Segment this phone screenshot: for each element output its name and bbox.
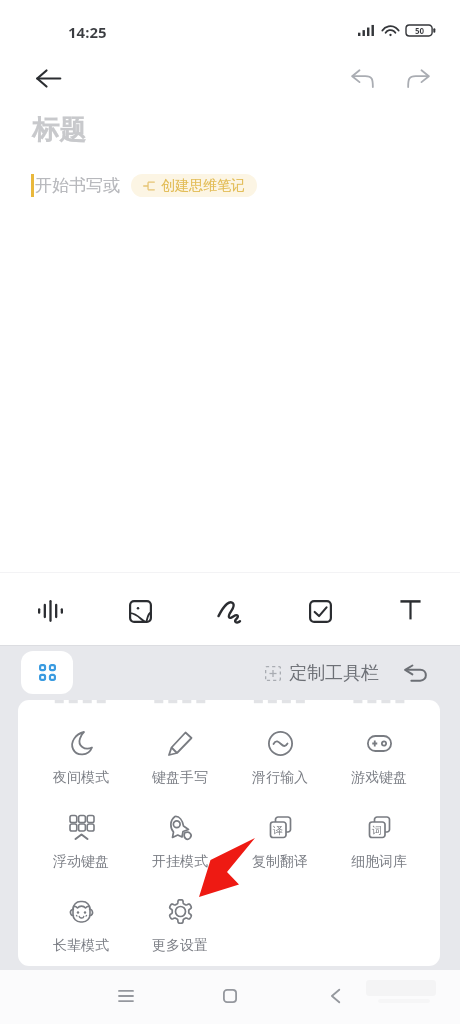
staticText: 50 xyxy=(415,25,425,36)
staticText: 夜间模式 xyxy=(53,769,109,787)
button[interactable]: 更多设置 xyxy=(140,890,220,955)
staticText: 浮动键盘 xyxy=(53,853,109,871)
button[interactable]: Home xyxy=(200,971,260,1021)
button[interactable]: Toolbox xyxy=(21,651,73,694)
staticText: 标题 xyxy=(32,113,86,147)
button[interactable]: Handwriting xyxy=(185,576,275,644)
button[interactable]: Recent apps xyxy=(96,971,156,1021)
staticText: 译 xyxy=(273,824,283,837)
button[interactable]: 浮动键盘 xyxy=(41,806,121,871)
staticText: 定制工具栏 xyxy=(289,662,379,685)
staticText: 开始书写或 xyxy=(35,175,120,196)
staticText: 游戏键盘 xyxy=(351,769,407,787)
staticText: 复制翻译 xyxy=(252,853,308,871)
button[interactable]: 键盘手写 xyxy=(140,722,220,787)
button[interactable]: 游戏键盘 xyxy=(339,722,419,787)
button[interactable]: Back xyxy=(26,56,70,100)
button[interactable]: 定制工具栏 xyxy=(263,659,381,688)
staticText: 词 xyxy=(372,824,382,837)
button[interactable]: Insert image xyxy=(95,576,185,644)
staticText: 细胞词库 xyxy=(351,853,407,871)
button[interactable]: Back xyxy=(305,971,365,1021)
button[interactable]: Record audio xyxy=(5,576,95,644)
button[interactable]: Collapse keyboard xyxy=(398,656,432,690)
button[interactable]: 开挂模式 xyxy=(140,806,220,871)
button[interactable]: 创建思维笔记 xyxy=(131,174,257,197)
staticText: 键盘手写 xyxy=(152,769,208,787)
button[interactable]: 长辈模式 xyxy=(41,890,121,955)
button[interactable]: Undo xyxy=(340,56,384,100)
button[interactable]: Redo xyxy=(396,56,440,100)
button[interactable]: To-do list xyxy=(275,576,365,644)
staticText: 创建思维笔记 xyxy=(161,177,245,195)
button[interactable]: 译 xyxy=(240,806,320,871)
button[interactable]: 夜间模式 xyxy=(41,722,121,787)
button[interactable]: 滑行输入 xyxy=(240,722,320,787)
staticText: 长辈模式 xyxy=(53,937,109,955)
staticText: 更多设置 xyxy=(152,937,208,955)
staticText: 14:25 xyxy=(68,22,107,42)
button[interactable]: Text style xyxy=(365,576,455,644)
button[interactable]: 词 xyxy=(339,806,419,871)
staticText: 滑行输入 xyxy=(252,769,308,787)
staticText: 开挂模式 xyxy=(152,853,208,871)
